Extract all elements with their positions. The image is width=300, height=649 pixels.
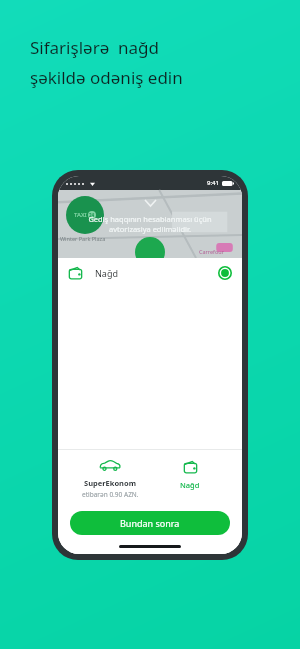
staticText: SuperEkonom [84, 478, 136, 488]
staticText: Sifarişlərə nağd [30, 36, 160, 59]
other: Taxi 24 logo [66, 196, 104, 234]
staticText: etibarən 0.90 AZN. [82, 490, 139, 499]
staticText: Carrefour [199, 248, 224, 255]
button[interactable]: Nağd [58, 258, 242, 288]
staticText: 24 [89, 212, 95, 218]
staticText: Winter Park Plaza [60, 235, 106, 242]
staticText: Gediş haqqının hesablanması üçün avtoriz… [68, 214, 232, 234]
button[interactable]: Collapse [140, 193, 160, 213]
staticText: Nağd [180, 480, 200, 490]
staticText: 9:41 [207, 179, 219, 187]
button[interactable]: SuperEkonom [70, 460, 150, 499]
staticText: TAXI [74, 211, 87, 219]
staticText: Bundan sonra [120, 517, 180, 529]
staticText: şəkildə odəniş edin [30, 66, 183, 89]
button[interactable]: Nağd [150, 460, 230, 490]
staticText: Nağd [95, 267, 118, 279]
button[interactable]: Bundan sonra [70, 511, 230, 535]
